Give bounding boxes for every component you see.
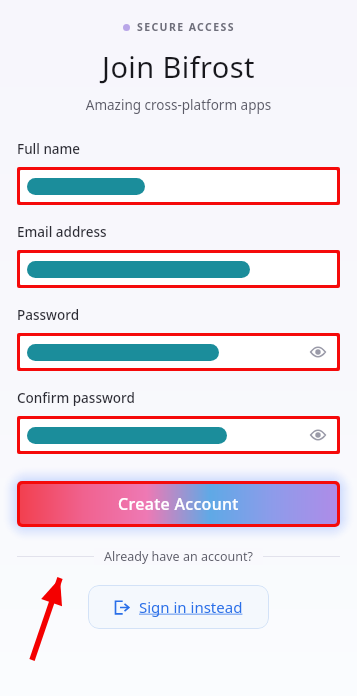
staticText: Confirm password: [17, 389, 135, 407]
staticText: Already have an account?: [104, 548, 253, 565]
staticText: Create Account: [118, 493, 239, 515]
button[interactable]: Show password: [307, 341, 329, 363]
button[interactable]: [20, 253, 337, 285]
staticText: Amazing cross-platform apps: [0, 96, 357, 114]
button[interactable]: Show password: [20, 419, 337, 451]
button[interactable]: Sign in instead: [88, 585, 269, 629]
button[interactable]: [20, 170, 337, 202]
staticText: SECURE ACCESS: [137, 20, 235, 34]
staticText: Join Bifrost: [0, 47, 357, 86]
staticText: Full name: [17, 140, 81, 158]
button[interactable]: Create Account: [20, 484, 337, 524]
staticText: Sign in instead: [139, 597, 243, 617]
staticText: Email address: [17, 223, 107, 241]
button[interactable]: Show password: [307, 424, 329, 446]
staticText: Password: [17, 306, 80, 324]
button[interactable]: Show password: [20, 336, 337, 368]
